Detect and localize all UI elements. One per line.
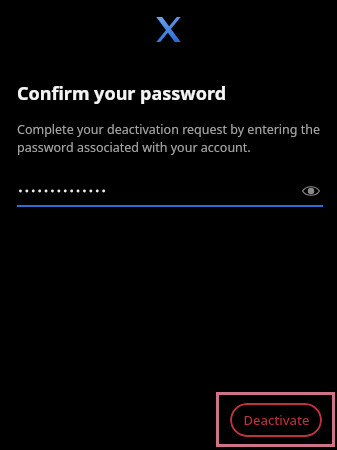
staticText: Deactivate bbox=[243, 411, 310, 429]
staticText: Confirm your password bbox=[17, 81, 227, 106]
button[interactable]: Show password bbox=[299, 179, 323, 203]
staticText: Complete your deactivation request by en… bbox=[17, 121, 323, 156]
button[interactable]: Deactivate bbox=[230, 403, 322, 437]
button[interactable]: Show password bbox=[17, 177, 323, 205]
